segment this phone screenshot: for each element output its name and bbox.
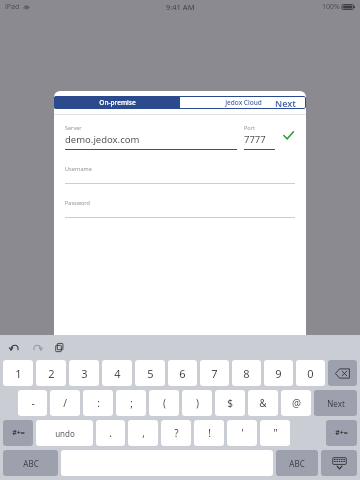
staticText: & — [259, 396, 267, 410]
button[interactable]: Password — [65, 199, 295, 218]
staticText: 9:41 AM — [166, 2, 195, 12]
button[interactable]: 3 — [69, 360, 99, 386]
staticText: ABC — [23, 458, 39, 469]
button[interactable]: Paste — [50, 338, 68, 356]
button[interactable]: 0 — [296, 360, 325, 386]
staticText: 4 — [114, 366, 121, 381]
staticText: @ — [292, 396, 301, 410]
button[interactable]: Backspace — [328, 360, 357, 386]
button[interactable]: @ — [281, 390, 311, 416]
button[interactable]: ; — [116, 390, 146, 416]
staticText: ? — [174, 426, 179, 440]
button[interactable]: 6 — [168, 360, 197, 386]
button[interactable]: " — [260, 420, 290, 446]
staticText: 100% — [322, 2, 340, 12]
button[interactable]: Redo — [28, 338, 46, 356]
staticText: - — [31, 396, 35, 410]
staticText: demo.jedox.com — [65, 133, 140, 146]
staticText: Server — [65, 124, 82, 131]
button[interactable]: 5 — [135, 360, 165, 386]
staticText: 3 — [81, 366, 88, 381]
staticText: 1 — [15, 366, 22, 381]
staticText: 2 — [48, 366, 55, 381]
staticText: . — [109, 426, 112, 440]
button[interactable]: undo — [36, 420, 93, 446]
staticText: 7 — [211, 366, 218, 381]
button[interactable]: / — [50, 390, 80, 416]
staticText: Port — [244, 124, 255, 131]
staticText: ; — [130, 396, 133, 410]
button[interactable]: - — [18, 390, 47, 416]
button[interactable]: ( — [149, 390, 179, 416]
staticText: Password — [65, 199, 90, 206]
button[interactable]: ? — [161, 420, 191, 446]
button[interactable]: , — [128, 420, 158, 446]
staticText: ABC — [289, 458, 305, 469]
staticText: $ — [227, 396, 233, 410]
button[interactable]: 9 — [264, 360, 293, 386]
staticText: #+= — [12, 428, 25, 438]
button[interactable]: #+= — [3, 420, 33, 446]
staticText: ( — [163, 396, 166, 410]
button[interactable]: 7 — [200, 360, 229, 386]
staticText: : — [97, 396, 100, 410]
button[interactable]: ABC — [276, 450, 318, 476]
staticText: #+= — [335, 428, 348, 438]
button[interactable]: : — [83, 390, 113, 416]
button[interactable]: 4 — [102, 360, 132, 386]
staticText: ) — [196, 396, 199, 410]
staticText: 6 — [179, 366, 186, 381]
staticText: 5 — [147, 366, 154, 381]
button[interactable]: ' — [227, 420, 257, 446]
button[interactable]: Jedox Cloud — [180, 96, 306, 109]
staticText: " — [273, 426, 278, 440]
button[interactable]: Username — [65, 165, 295, 184]
button[interactable]: 1 — [3, 360, 33, 386]
button[interactable]: . — [96, 420, 125, 446]
button[interactable]: Hide keyboard — [321, 450, 357, 476]
staticText: ' — [241, 426, 244, 440]
staticText: 9 — [275, 366, 282, 381]
button[interactable]: & — [248, 390, 278, 416]
staticText: undo — [55, 428, 75, 439]
button[interactable]: 2 — [36, 360, 66, 386]
staticText: 8 — [243, 366, 250, 381]
button[interactable]: ABC — [3, 450, 58, 476]
button[interactable]: Next — [265, 93, 306, 113]
staticText: / — [63, 396, 67, 410]
button[interactable]: Undo — [6, 338, 24, 356]
button[interactable]: 8 — [232, 360, 261, 386]
staticText: Jedox Cloud — [225, 98, 262, 107]
staticText: Next — [275, 97, 296, 109]
button[interactable]: ! — [194, 420, 224, 446]
button[interactable]: On-premise — [54, 96, 180, 109]
button[interactable]: Cancel — [54, 93, 103, 113]
staticText: 7777 — [244, 133, 266, 146]
button[interactable]: #+= — [326, 420, 357, 446]
staticText: Next — [327, 398, 345, 409]
button[interactable]: ) — [182, 390, 212, 416]
staticText: On-premise — [99, 98, 136, 107]
staticText: 0 — [307, 366, 314, 381]
staticText: ! — [208, 426, 211, 440]
button[interactable]: $ — [215, 390, 245, 416]
staticText: , — [142, 426, 145, 440]
staticText: Username — [65, 165, 92, 172]
button[interactable]: Next — [314, 390, 357, 416]
staticText: iPad — [5, 2, 20, 12]
